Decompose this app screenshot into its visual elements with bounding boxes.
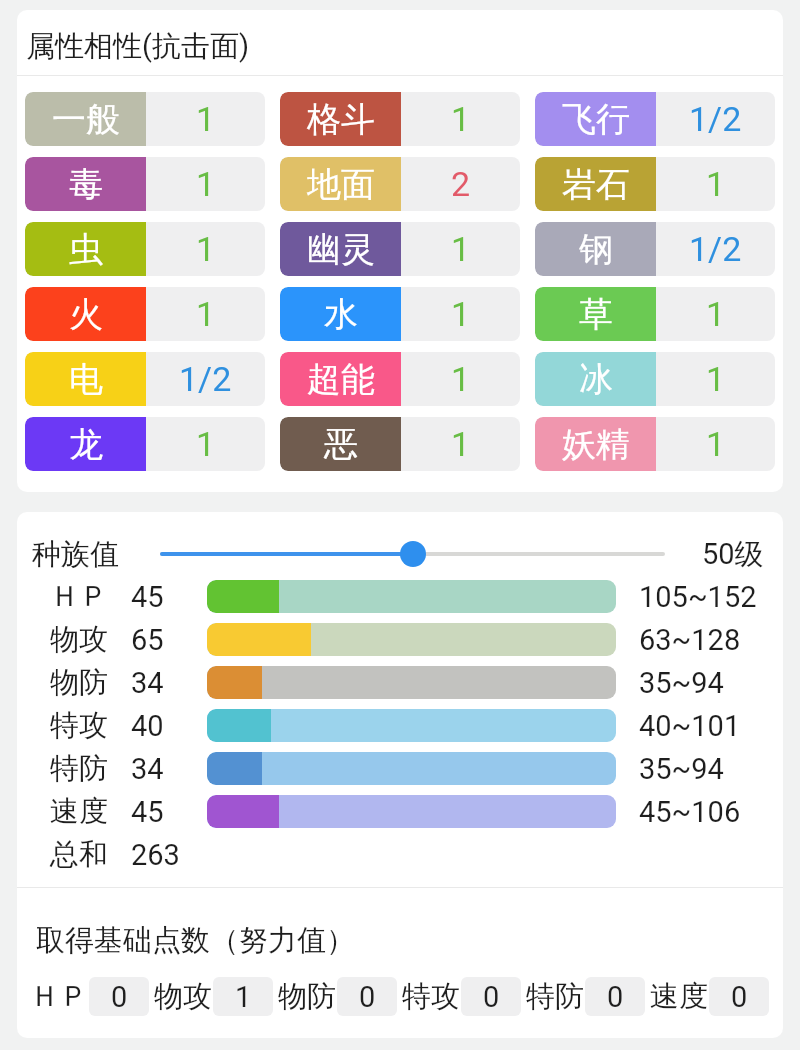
button[interactable]: 特攻 bbox=[402, 977, 526, 1016]
staticText: 物防 bbox=[278, 978, 336, 1015]
staticText: 岩石 bbox=[562, 163, 630, 206]
staticText: 1 bbox=[196, 424, 216, 464]
staticText: 速度 bbox=[650, 978, 708, 1015]
staticText: ＨＰ bbox=[30, 978, 88, 1015]
staticText: 火 bbox=[69, 293, 103, 336]
staticText: 特攻 bbox=[50, 707, 108, 744]
staticText: ＨＰ bbox=[50, 578, 108, 615]
button[interactable]: 一般 bbox=[25, 92, 265, 146]
staticText: 种族值 bbox=[32, 536, 119, 573]
staticText: 35~94 bbox=[639, 752, 724, 786]
staticText: 40~101 bbox=[639, 709, 741, 743]
staticText: 35~94 bbox=[639, 666, 724, 700]
staticText: 2 bbox=[451, 164, 471, 204]
staticText: 0 bbox=[483, 980, 500, 1014]
button[interactable]: 虫 bbox=[25, 222, 265, 276]
staticText: 40 bbox=[131, 709, 164, 743]
staticText: 恶 bbox=[324, 423, 358, 466]
staticText: 特防 bbox=[50, 750, 108, 787]
staticText: 1 bbox=[196, 294, 216, 334]
button[interactable]: ＨＰ bbox=[30, 977, 154, 1016]
staticText: 1/2 bbox=[689, 99, 742, 139]
staticText: 63~128 bbox=[639, 623, 741, 657]
staticText: 特防 bbox=[526, 978, 584, 1015]
button[interactable]: 草 bbox=[535, 287, 775, 341]
button[interactable]: 水 bbox=[280, 287, 520, 341]
staticText: 一般 bbox=[52, 98, 120, 141]
staticText: 1 bbox=[706, 424, 726, 464]
button[interactable]: 冰 bbox=[535, 352, 775, 406]
button[interactable]: 速度 bbox=[650, 977, 774, 1016]
staticText: 1 bbox=[706, 359, 726, 399]
staticText: 45 bbox=[131, 580, 164, 614]
button[interactable]: 超能 bbox=[280, 352, 520, 406]
button[interactable]: 钢 bbox=[535, 222, 775, 276]
staticText: 1 bbox=[196, 99, 216, 139]
staticText: 263 bbox=[131, 838, 180, 872]
button[interactable]: 飞行 bbox=[535, 92, 775, 146]
staticText: 0 bbox=[731, 980, 748, 1014]
button[interactable]: 电 bbox=[25, 352, 265, 406]
button[interactable]: 物攻 bbox=[154, 977, 278, 1016]
staticText: 45~106 bbox=[639, 795, 741, 829]
staticText: 幽灵 bbox=[307, 228, 375, 271]
staticText: 0 bbox=[359, 980, 376, 1014]
button[interactable]: 恶 bbox=[280, 417, 520, 471]
staticText: 钢 bbox=[579, 228, 613, 271]
staticText: 属性相性(抗击面) bbox=[26, 28, 250, 65]
staticText: 0 bbox=[111, 980, 128, 1014]
staticText: 1/2 bbox=[689, 229, 742, 269]
staticText: 物防 bbox=[50, 664, 108, 701]
staticText: 34 bbox=[131, 666, 164, 700]
staticText: 1 bbox=[451, 229, 471, 269]
staticText: 格斗 bbox=[307, 98, 375, 141]
staticText: 0 bbox=[607, 980, 624, 1014]
staticText: 34 bbox=[131, 752, 164, 786]
button[interactable]: 幽灵 bbox=[280, 222, 520, 276]
staticText: 1 bbox=[706, 164, 726, 204]
staticText: 龙 bbox=[69, 423, 103, 466]
button[interactable]: Level slider bbox=[160, 539, 665, 569]
staticText: 105~152 bbox=[639, 580, 757, 614]
staticText: 1 bbox=[196, 229, 216, 269]
staticText: 地面 bbox=[307, 163, 375, 206]
button[interactable]: 岩石 bbox=[535, 157, 775, 211]
staticText: 1 bbox=[451, 359, 471, 399]
staticText: 65 bbox=[131, 623, 164, 657]
staticText: 冰 bbox=[579, 358, 613, 401]
staticText: 1 bbox=[235, 980, 252, 1014]
staticText: 虫 bbox=[69, 228, 103, 271]
staticText: 特攻 bbox=[402, 978, 460, 1015]
button[interactable]: 火 bbox=[25, 287, 265, 341]
staticText: 超能 bbox=[307, 358, 375, 401]
staticText: 速度 bbox=[50, 793, 108, 830]
staticText: 物攻 bbox=[50, 621, 108, 658]
staticText: 1 bbox=[451, 99, 471, 139]
staticText: 水 bbox=[324, 293, 358, 336]
button[interactable]: 地面 bbox=[280, 157, 520, 211]
staticText: 飞行 bbox=[562, 98, 630, 141]
staticText: 妖精 bbox=[562, 423, 630, 466]
staticText: 毒 bbox=[69, 163, 103, 206]
button[interactable]: 龙 bbox=[25, 417, 265, 471]
button[interactable]: 格斗 bbox=[280, 92, 520, 146]
staticText: 50级 bbox=[702, 536, 764, 573]
button[interactable]: 妖精 bbox=[535, 417, 775, 471]
button[interactable]: 物防 bbox=[278, 977, 402, 1016]
staticText: 45 bbox=[131, 795, 164, 829]
staticText: 1 bbox=[451, 294, 471, 334]
staticText: 1/2 bbox=[179, 359, 232, 399]
staticText: 1 bbox=[196, 164, 216, 204]
button[interactable]: 毒 bbox=[25, 157, 265, 211]
staticText: 1 bbox=[706, 294, 726, 334]
staticText: 物攻 bbox=[154, 978, 212, 1015]
staticText: 取得基础点数（努力值） bbox=[36, 922, 355, 959]
staticText: 电 bbox=[69, 358, 103, 401]
staticText: 1 bbox=[451, 424, 471, 464]
staticText: 草 bbox=[579, 293, 613, 336]
staticText: 总和 bbox=[50, 836, 108, 873]
button[interactable]: 特防 bbox=[526, 977, 650, 1016]
